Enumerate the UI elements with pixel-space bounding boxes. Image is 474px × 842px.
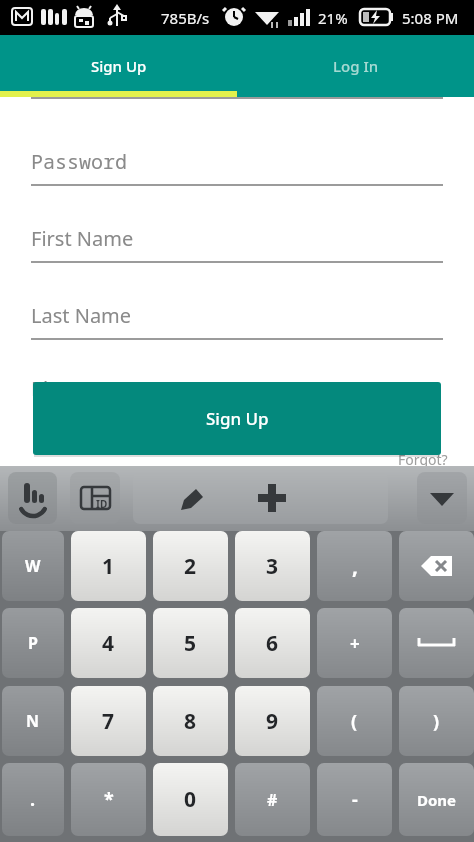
staticText: Password [31, 148, 127, 175]
button[interactable]: 1 [71, 531, 146, 601]
button[interactable]: - [317, 763, 392, 836]
staticText: Forgot? [398, 450, 448, 469]
button[interactable]: Sign Up [0, 35, 237, 97]
button[interactable]: 2 [153, 531, 228, 601]
button[interactable]: Log In [237, 35, 474, 97]
staticText: 785B/s [161, 8, 210, 28]
button[interactable]: 0 [153, 763, 228, 836]
button[interactable] [133, 472, 388, 524]
staticText: . [30, 787, 36, 812]
button[interactable] [417, 472, 467, 524]
staticText: 9 [266, 707, 279, 736]
staticText: 2 [184, 552, 197, 581]
staticText: 7 [102, 707, 115, 736]
button[interactable]: 3 [235, 531, 310, 601]
staticText: - [352, 787, 358, 812]
staticText: 3 [266, 552, 279, 581]
staticText: Last Name [31, 302, 132, 329]
staticText: + [350, 632, 360, 655]
button[interactable]: W [2, 531, 64, 601]
staticText: ) [433, 709, 440, 734]
staticText: ( [351, 709, 358, 734]
staticText: 0 [184, 785, 197, 814]
button[interactable] [399, 608, 474, 678]
staticText: 5:08 PM [402, 8, 459, 28]
button[interactable]: ID [70, 472, 120, 524]
button[interactable]: * [71, 763, 146, 836]
button[interactable]: 5 [153, 608, 228, 678]
staticText: 4 [102, 629, 115, 658]
button[interactable]: 4 [71, 608, 146, 678]
button[interactable]: 9 [235, 686, 310, 756]
staticText: 6 [266, 629, 279, 658]
staticText: Sign Up [206, 407, 269, 430]
staticText: 21% [318, 8, 348, 28]
button[interactable]: Done [399, 763, 474, 836]
staticText: First Name [31, 225, 134, 252]
staticText: Phone [31, 375, 92, 402]
staticText: * [104, 787, 114, 812]
button[interactable]: ) [399, 686, 474, 756]
staticText: Done [417, 790, 457, 810]
button[interactable]: N [2, 686, 64, 756]
staticText: N [26, 710, 40, 732]
button[interactable]: 6 [235, 608, 310, 678]
button[interactable] [399, 531, 474, 601]
button[interactable]: Sign Up [33, 382, 441, 455]
button[interactable]: + [317, 608, 392, 678]
staticText: W [25, 555, 41, 577]
button[interactable]: # [235, 763, 310, 836]
staticText: , [352, 552, 358, 581]
button[interactable]: 7 [71, 686, 146, 756]
button[interactable]: 8 [153, 686, 228, 756]
button[interactable]: ( [317, 686, 392, 756]
button[interactable]: , [317, 531, 392, 601]
staticText: P [28, 632, 38, 654]
staticText: ID [96, 497, 108, 511]
button[interactable]: . [2, 763, 64, 836]
staticText: Sign Up [91, 56, 147, 76]
staticText: 1 [102, 552, 115, 581]
button[interactable] [8, 472, 57, 524]
staticText: 5 [184, 629, 197, 658]
staticText: 8 [184, 707, 197, 736]
button[interactable]: P [2, 608, 64, 678]
staticText: # [267, 789, 278, 811]
staticText: Log In [333, 56, 379, 76]
